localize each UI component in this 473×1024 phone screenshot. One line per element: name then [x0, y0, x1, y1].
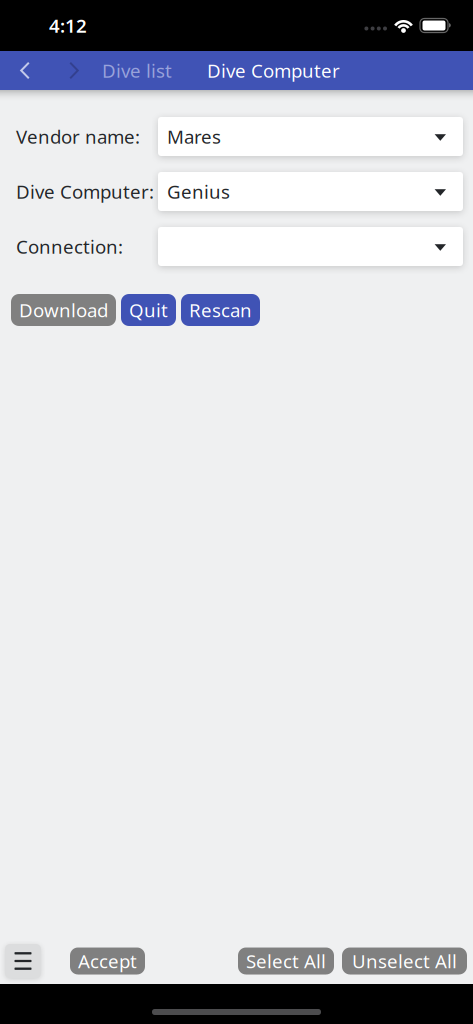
button[interactable]: Mares — [158, 117, 463, 156]
staticText: 4:12 — [49, 13, 87, 38]
button[interactable]: Back — [10, 51, 40, 90]
button[interactable]: Download — [11, 294, 116, 326]
button[interactable]: Rescan — [181, 294, 260, 326]
button[interactable]: Dive Computer — [207, 51, 340, 90]
staticText: Connection: — [16, 234, 123, 259]
button[interactable]: Genius — [158, 172, 463, 211]
staticText: Dive Computer: — [16, 179, 154, 204]
button[interactable]: Unselect All — [342, 947, 467, 974]
button[interactable]: Menu — [5, 944, 41, 978]
staticText: Unselect All — [352, 949, 457, 973]
staticText: Genius — [167, 179, 230, 204]
button[interactable] — [158, 227, 463, 266]
staticText: Download — [19, 298, 108, 322]
button[interactable]: Dive list — [102, 51, 172, 90]
staticText: Rescan — [189, 298, 252, 322]
staticText: Quit — [129, 298, 168, 322]
button[interactable]: Quit — [121, 294, 176, 326]
staticText: Vendor name: — [16, 124, 140, 149]
button[interactable]: Forward — [59, 51, 89, 90]
staticText: Select All — [246, 949, 326, 973]
button[interactable]: Accept — [70, 947, 145, 974]
staticText: Dive list — [102, 58, 172, 83]
button[interactable]: Select All — [238, 947, 334, 974]
staticText: Accept — [78, 949, 137, 973]
staticText: Dive Computer — [207, 58, 340, 83]
staticText: Mares — [167, 124, 221, 149]
